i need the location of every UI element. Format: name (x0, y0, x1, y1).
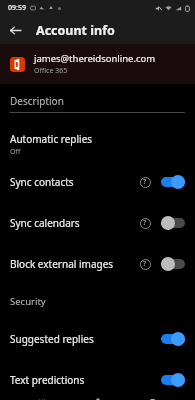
button[interactable]: Help (137, 256, 153, 272)
button[interactable]: Automatic replies (0, 127, 195, 161)
button[interactable]: On (161, 373, 185, 387)
button[interactable]: Help (137, 215, 153, 231)
button[interactable]: Text predictions (0, 359, 195, 400)
button[interactable]: Off (161, 257, 185, 271)
staticText: ? (143, 218, 147, 228)
staticText: Security (10, 295, 46, 308)
staticText: ? (143, 259, 147, 269)
staticText: Sync calendars (10, 216, 137, 230)
staticText: Block external images (10, 257, 137, 271)
button[interactable]: Sync contacts (0, 161, 195, 202)
staticText: ? (143, 177, 147, 187)
button[interactable]: Back (3, 18, 27, 42)
staticText: Automatic replies (10, 132, 93, 146)
staticText: Suggested replies (10, 332, 161, 346)
staticText: Description (10, 94, 64, 108)
button[interactable]: Off (161, 216, 185, 230)
staticText: 09:59 (8, 3, 26, 13)
staticText: Sync contacts (10, 175, 137, 189)
button[interactable]: james@thereidsonline.com (0, 44, 195, 84)
staticText: Office 365 (34, 66, 68, 76)
staticText: james@thereidsonline.com (34, 52, 156, 65)
button[interactable]: On (161, 332, 185, 346)
button[interactable]: Help (137, 174, 153, 190)
staticText: Text predictions (10, 373, 161, 387)
staticText: Off (10, 147, 21, 157)
button[interactable]: Sync calendars (0, 202, 195, 243)
button[interactable]: On (161, 175, 185, 189)
staticText: Account info (36, 22, 115, 39)
button[interactable]: Block external images (0, 243, 195, 284)
button[interactable]: Suggested replies (0, 318, 195, 359)
